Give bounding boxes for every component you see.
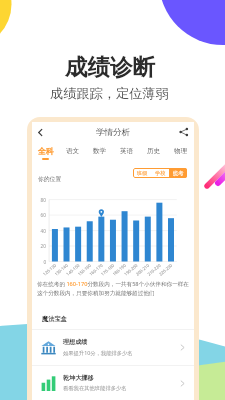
- button[interactable]: 数学: [86, 142, 113, 164]
- staticText: 物理: [174, 147, 188, 155]
- button[interactable]: 英语: [113, 142, 140, 164]
- staticText: 班级: [137, 170, 148, 177]
- staticText: 学情分析: [96, 127, 130, 138]
- staticText: 数学: [93, 147, 107, 155]
- staticText: 你的位置: [38, 175, 62, 182]
- button[interactable]: 语文: [59, 142, 86, 164]
- staticText: 魔法宝盒: [42, 315, 67, 323]
- staticText: 英语: [120, 147, 134, 155]
- staticText: 你在统考的 160-170分数段内，一共有58个小伙伴和你一样在这个分数段内，只…: [37, 280, 190, 297]
- staticText: 成绩诊断: [65, 53, 155, 81]
- button[interactable]: Back: [34, 126, 47, 139]
- button[interactable]: 全科: [32, 142, 59, 164]
- button[interactable]: 乾坤大挪移: [32, 366, 194, 400]
- button[interactable]: 物理: [167, 142, 194, 164]
- button[interactable]: 学校: [151, 168, 169, 178]
- staticText: 乾坤大挪移: [63, 374, 94, 382]
- staticText: 历史: [147, 147, 161, 155]
- button[interactable]: 班级: [133, 168, 151, 178]
- staticText: 全科: [38, 146, 54, 156]
- staticText: 学校: [155, 170, 166, 177]
- staticText: 理想成绩: [63, 338, 88, 346]
- staticText: 语文: [66, 147, 80, 155]
- staticText: 看看我在其他班能排多少名: [63, 385, 127, 392]
- button[interactable]: 理想成绩: [32, 330, 194, 365]
- staticText: 成绩跟踪，定位薄弱: [50, 85, 169, 102]
- button[interactable]: Share: [178, 126, 190, 138]
- button[interactable]: 历史: [140, 142, 167, 164]
- staticText: 统考: [173, 170, 184, 177]
- staticText: 如果提升10分，我能排多少名: [63, 349, 133, 356]
- button[interactable]: 统考: [169, 168, 187, 178]
